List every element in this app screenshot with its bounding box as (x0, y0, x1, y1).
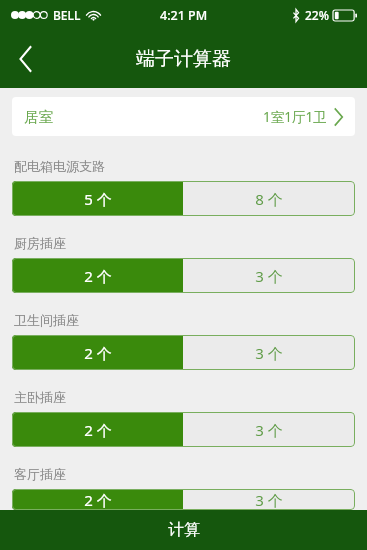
staticText: 3 个 (255, 490, 283, 510)
button[interactable]: 计算 (0, 510, 367, 550)
staticText: 客厅插座 (14, 466, 66, 482)
staticText: 配电箱电源支路 (14, 158, 105, 174)
button[interactable]: 2 个 (12, 258, 183, 293)
button[interactable]: 8 个 (183, 181, 355, 216)
staticText: 2 个 (84, 490, 112, 510)
button[interactable]: 2 个 (12, 412, 183, 447)
staticText: 2 个 (84, 266, 112, 286)
staticText: 1室1厅1卫 (263, 108, 327, 126)
button[interactable]: 3 个 (183, 412, 355, 447)
staticText: 3 个 (255, 420, 283, 440)
staticText: 22% (305, 7, 329, 23)
staticText: 厨房插座 (14, 235, 66, 251)
staticText: 端子计算器 (136, 47, 231, 71)
button[interactable]: 居室 (12, 97, 355, 136)
staticText: BELL (53, 7, 81, 23)
button[interactable]: Back (0, 33, 52, 85)
button[interactable]: 3 个 (183, 258, 355, 293)
button[interactable]: 2 个 (12, 489, 183, 510)
staticText: 2 个 (84, 420, 112, 440)
staticText: 卫生间插座 (14, 312, 79, 328)
button[interactable]: 2 个 (12, 335, 183, 370)
button[interactable]: 5 个 (12, 181, 183, 216)
staticText: 4:21 PM (160, 7, 208, 24)
staticText: 3 个 (255, 343, 283, 363)
staticText: 8 个 (255, 189, 283, 209)
staticText: 5 个 (84, 189, 112, 209)
button[interactable]: 3 个 (183, 335, 355, 370)
staticText: 计算 (168, 520, 200, 540)
button[interactable]: 3 个 (183, 489, 355, 510)
staticText: 2 个 (84, 343, 112, 363)
staticText: 居室 (24, 108, 53, 126)
staticText: 3 个 (255, 266, 283, 286)
staticText: 主卧插座 (14, 389, 66, 405)
